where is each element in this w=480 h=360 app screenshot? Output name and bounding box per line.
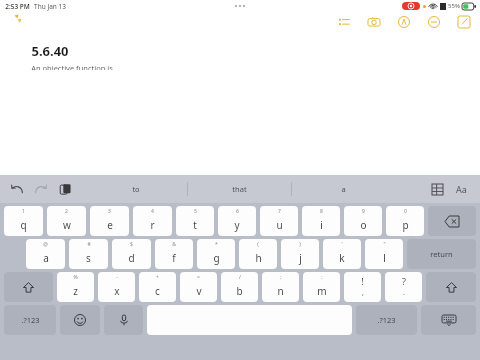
- staticText: ,: [362, 288, 364, 298]
- staticText: :: [321, 274, 323, 281]
- staticText: j: [299, 251, 302, 265]
- staticText: t: [193, 218, 197, 232]
- staticText: 2:53 PM: [5, 2, 30, 11]
- button[interactable]: Paste: [56, 180, 74, 198]
- staticText: 3: [108, 208, 111, 215]
- button[interactable]: -: [98, 272, 135, 302]
- button[interactable]: 5: [176, 206, 214, 236]
- button[interactable]: that: [188, 175, 291, 203]
- staticText: ': [341, 241, 343, 248]
- button[interactable]: ": [365, 239, 403, 269]
- button[interactable]: a: [292, 175, 395, 203]
- button[interactable]: ): [281, 239, 319, 269]
- staticText: d: [128, 251, 135, 265]
- staticText: 1: [22, 208, 25, 215]
- button[interactable]: Insert table: [428, 180, 446, 198]
- button[interactable]: %: [57, 272, 94, 302]
- button[interactable]: =: [180, 272, 217, 302]
- staticText: q: [20, 218, 27, 232]
- button[interactable]: ;: [262, 272, 299, 302]
- staticText: that: [232, 184, 247, 194]
- button[interactable]: (: [239, 239, 277, 269]
- button[interactable]: ': [323, 239, 361, 269]
- button[interactable]: 7: [260, 206, 298, 236]
- button[interactable]: Share: [426, 14, 442, 30]
- staticText: o: [360, 218, 367, 232]
- staticText: n: [277, 284, 284, 298]
- button[interactable]: Shift: [4, 272, 53, 302]
- staticText: p: [402, 218, 409, 232]
- staticText: 55%: [448, 2, 460, 10]
- button[interactable]: Redo: [32, 180, 50, 198]
- staticText: ): [299, 241, 301, 248]
- button[interactable]: to: [85, 175, 187, 203]
- staticText: +: [156, 274, 159, 281]
- button[interactable]: .?123: [356, 305, 417, 335]
- button[interactable]: #: [69, 239, 108, 269]
- staticText: 5.6.40: [31, 42, 69, 60]
- staticText: !: [361, 275, 364, 287]
- staticText: Thu Jan 13: [34, 2, 66, 11]
- other: Highlight: [14, 14, 24, 24]
- staticText: z: [73, 284, 78, 298]
- button[interactable]: Camera: [366, 14, 382, 30]
- button[interactable]: [428, 206, 476, 236]
- staticText: .: [403, 288, 405, 298]
- staticText: 9: [362, 208, 365, 215]
- staticText: 0: [404, 208, 407, 215]
- button[interactable]: +: [139, 272, 176, 302]
- button[interactable]: List: [336, 14, 352, 30]
- staticText: f: [172, 251, 176, 265]
- staticText: ": [383, 241, 386, 248]
- staticText: l: [383, 251, 386, 265]
- button[interactable]: $: [112, 239, 151, 269]
- staticText: c: [155, 284, 160, 298]
- staticText: .?123: [21, 315, 40, 325]
- staticText: x: [114, 284, 120, 298]
- button[interactable]: 0: [386, 206, 424, 236]
- staticText: a: [341, 184, 346, 194]
- button[interactable]: return: [407, 239, 476, 269]
- staticText: %: [73, 274, 78, 281]
- button[interactable]: &: [155, 239, 193, 269]
- staticText: b: [236, 284, 243, 298]
- button[interactable]: :: [303, 272, 340, 302]
- button[interactable]: Undo: [8, 180, 26, 198]
- button[interactable]: 1: [4, 206, 43, 236]
- button[interactable]: !: [344, 272, 381, 302]
- staticText: 5: [194, 208, 197, 215]
- button[interactable]: Compose: [456, 14, 472, 30]
- button[interactable]: /: [221, 272, 258, 302]
- button[interactable]: 3: [90, 206, 129, 236]
- button[interactable]: 6: [218, 206, 256, 236]
- button[interactable]: Format text: [452, 180, 470, 198]
- button[interactable]: Emoji: [60, 305, 100, 335]
- button[interactable]: .?123: [4, 305, 56, 335]
- button[interactable]: 2: [47, 206, 86, 236]
- staticText: ;: [280, 274, 282, 281]
- staticText: .?123: [377, 315, 396, 325]
- button[interactable]: Dictate: [104, 305, 143, 335]
- staticText: return: [430, 249, 453, 259]
- staticText: 6: [236, 208, 239, 215]
- button[interactable]: 9: [344, 206, 382, 236]
- staticText: r: [150, 218, 155, 232]
- button[interactable]: @: [26, 239, 65, 269]
- button[interactable]: 4: [133, 206, 172, 236]
- staticText: m: [317, 284, 327, 298]
- button[interactable]: Shift: [426, 272, 476, 302]
- button[interactable]: Hide keyboard: [421, 305, 476, 335]
- staticText: v: [196, 284, 202, 298]
- staticText: u: [276, 218, 283, 232]
- staticText: a: [43, 251, 49, 265]
- staticText: 7: [278, 208, 281, 215]
- button[interactable]: *: [197, 239, 235, 269]
- button[interactable]: ?: [385, 272, 422, 302]
- button[interactable]: Markup: [396, 14, 412, 30]
- staticText: 2: [65, 208, 68, 215]
- staticText: 4: [151, 208, 154, 215]
- staticText: *: [215, 241, 218, 248]
- staticText: /: [239, 274, 241, 281]
- button[interactable]: 8: [302, 206, 340, 236]
